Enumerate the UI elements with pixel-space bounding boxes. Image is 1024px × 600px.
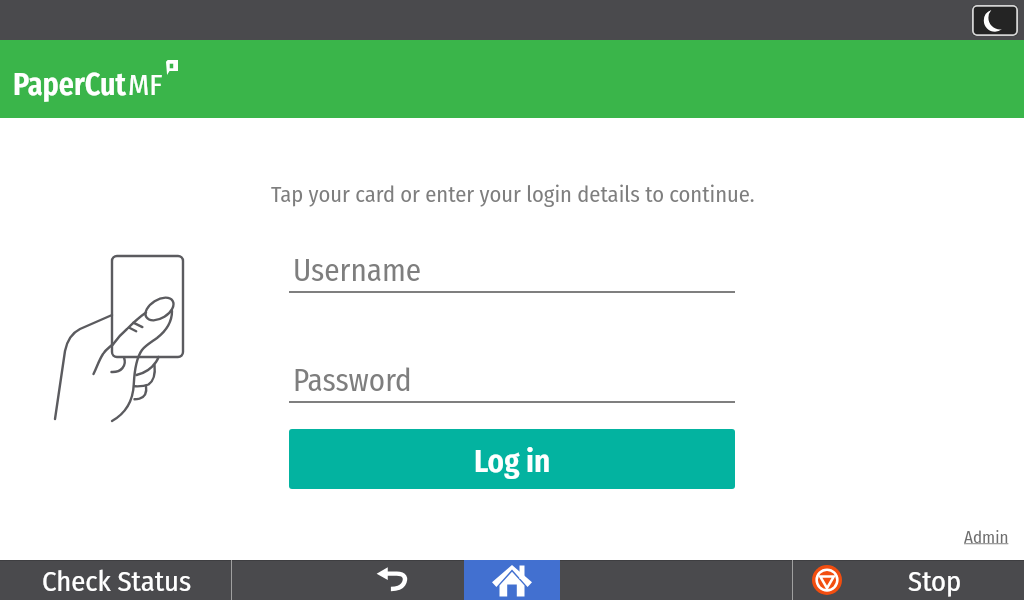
button[interactable]: Back bbox=[232, 560, 464, 600]
button[interactable]: Check Status bbox=[0, 560, 231, 600]
button[interactable]: Admin bbox=[964, 527, 1009, 547]
button[interactable]: Stop bbox=[793, 560, 1024, 600]
staticText: Stop bbox=[908, 564, 962, 598]
staticText: Username bbox=[293, 252, 422, 289]
staticText: Admin bbox=[964, 527, 1009, 547]
button[interactable]: Log in bbox=[289, 429, 735, 489]
staticText: Password bbox=[293, 362, 412, 399]
staticText: MF bbox=[128, 67, 163, 103]
staticText: Check Status bbox=[42, 564, 192, 598]
button[interactable]: Sleep bbox=[972, 5, 1018, 36]
staticText: PaperCut bbox=[13, 67, 126, 103]
staticText: Log in bbox=[474, 443, 551, 480]
staticText: Tap your card or enter your login detail… bbox=[271, 181, 755, 208]
button[interactable]: Home bbox=[464, 560, 560, 600]
